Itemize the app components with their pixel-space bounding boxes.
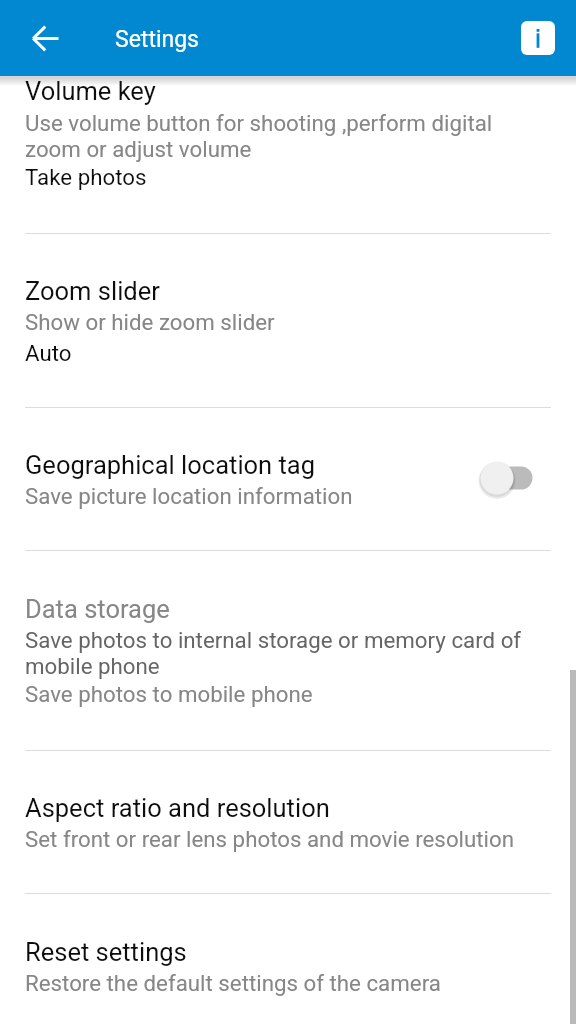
staticText: Save photos to internal storage or memor… <box>25 627 530 679</box>
button[interactable]: Geographical location tag <box>0 408 576 550</box>
staticText: Show or hide zoom slider <box>25 309 275 335</box>
staticText: Zoom slider <box>25 276 160 306</box>
staticText: Reset settings <box>25 937 187 967</box>
staticText: Save picture location information <box>25 483 353 509</box>
staticText: Use volume button for shooting ,perform … <box>25 110 525 162</box>
button[interactable]: Back <box>19 12 71 64</box>
button[interactable]: Data storage <box>0 551 576 750</box>
staticText: Save photos to mobile phone <box>25 681 313 707</box>
button[interactable]: Information <box>521 21 555 55</box>
staticText: Volume key <box>25 76 156 106</box>
staticText: Restore the default settings of the came… <box>25 970 441 996</box>
button[interactable]: Zoom slider <box>0 234 576 407</box>
staticText: Take photos <box>25 164 147 190</box>
button[interactable]: Geographical location tag switch, off <box>466 458 538 502</box>
button[interactable]: Aspect ratio and resolution <box>0 751 576 893</box>
staticText: Settings <box>115 26 199 53</box>
button[interactable]: Reset settings <box>0 894 576 1024</box>
staticText: Geographical location tag <box>25 450 316 480</box>
staticText: Auto <box>25 340 72 366</box>
staticText: Set front or rear lens photos and movie … <box>25 826 515 852</box>
staticText: Aspect ratio and resolution <box>25 793 330 823</box>
button[interactable]: Volume key <box>0 76 576 233</box>
staticText: Data storage <box>25 594 170 624</box>
